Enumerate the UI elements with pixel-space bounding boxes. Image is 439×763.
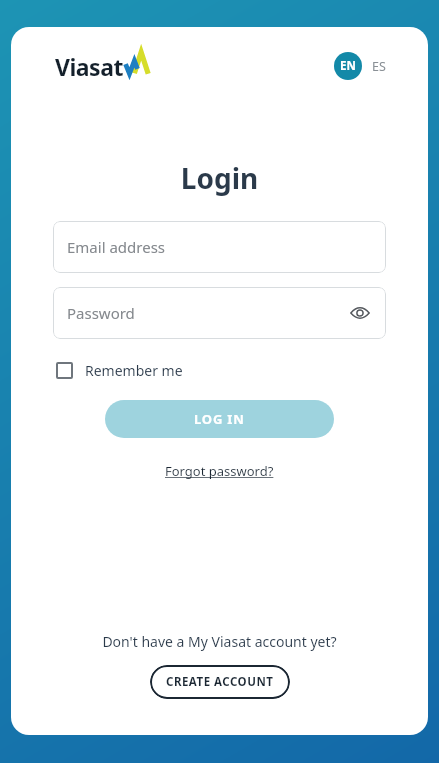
- staticText: EN: [340, 58, 356, 74]
- button[interactable]: CREATE ACCOUNT: [150, 665, 290, 699]
- button[interactable]: Password: [53, 287, 386, 339]
- staticText: ES: [372, 58, 386, 75]
- button[interactable]: ES: [362, 58, 400, 75]
- staticText: CREATE ACCOUNT: [166, 674, 274, 690]
- staticText: Password: [67, 303, 135, 323]
- staticText: Remember me: [85, 361, 183, 380]
- button[interactable]: LOG IN: [105, 400, 334, 438]
- button[interactable]: Forgot password?: [161, 460, 278, 482]
- staticText: Viasat: [55, 51, 123, 82]
- staticText: Email address: [67, 237, 166, 257]
- button[interactable]: Remember me: [54, 357, 185, 384]
- staticText: LOG IN: [194, 410, 245, 428]
- button[interactable]: EN: [334, 52, 362, 80]
- button[interactable]: Show password: [346, 299, 374, 327]
- staticText: Login: [11, 159, 428, 197]
- button[interactable]: Email address: [53, 221, 386, 273]
- staticText: Don't have a My Viasat account yet?: [11, 632, 428, 651]
